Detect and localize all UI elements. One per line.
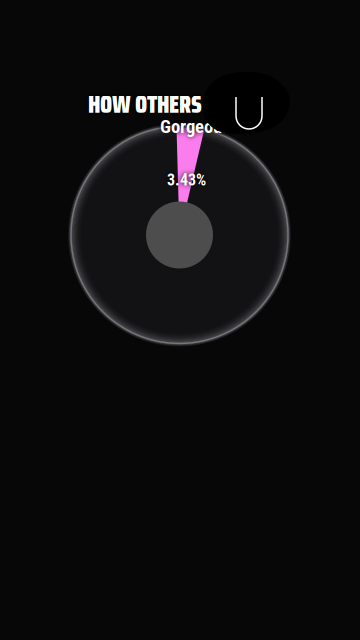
staticText: Gorgeous (160, 116, 230, 137)
staticText: 3.43% (167, 171, 206, 189)
staticText: HOW OTHERS SEE YOU (88, 86, 276, 123)
